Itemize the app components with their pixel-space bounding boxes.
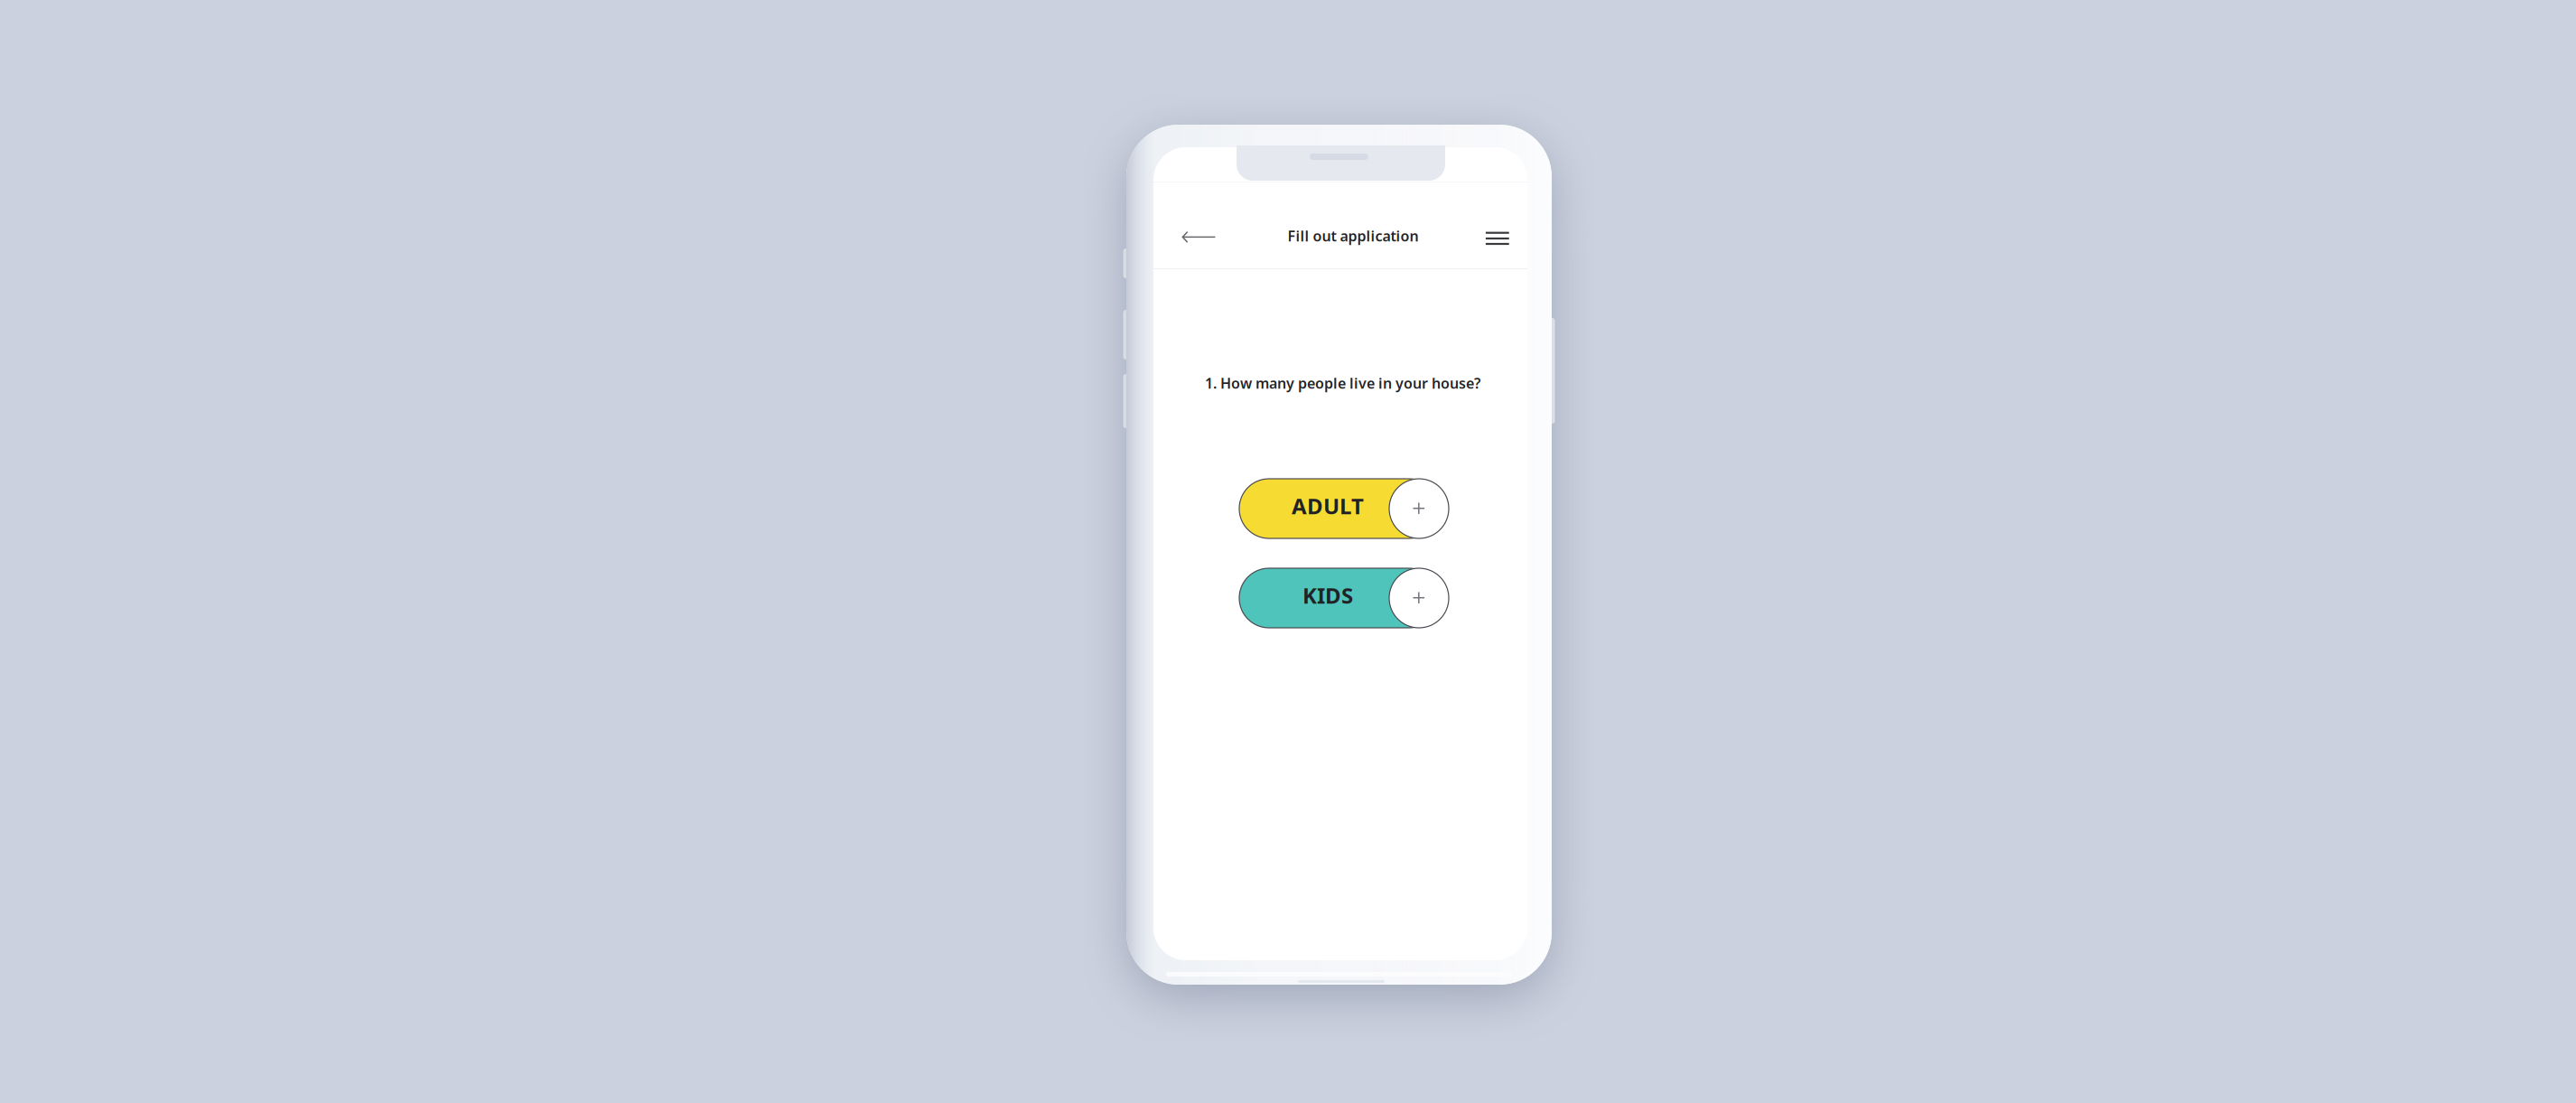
button[interactable]: ADULT xyxy=(1239,479,1449,538)
staticText: ADULT xyxy=(1292,492,1364,520)
staticText: 1. How many people live in your house? xyxy=(1205,373,1480,393)
button[interactable]: Menu xyxy=(1465,217,1515,258)
button[interactable]: Back xyxy=(1166,217,1229,258)
staticText: KIDS xyxy=(1302,581,1353,610)
staticText: Fill out application xyxy=(1288,226,1419,245)
button[interactable]: KIDS xyxy=(1239,568,1449,628)
